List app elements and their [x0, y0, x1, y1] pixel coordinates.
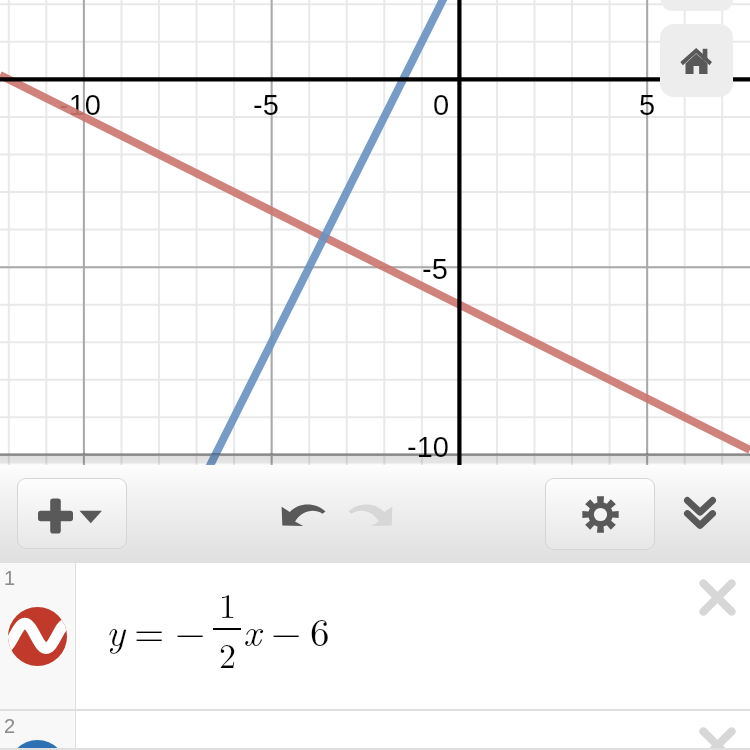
- staticText: 5: [639, 89, 656, 121]
- staticText: −: [271, 602, 302, 657]
- staticText: 0: [433, 89, 450, 121]
- button[interactable]: 2: [0, 711, 750, 750]
- button[interactable]: Settings: [546, 479, 654, 549]
- button[interactable]: Add expression: [18, 479, 126, 548]
- staticText: -10: [407, 431, 449, 463]
- button[interactable]: Redo: [338, 479, 406, 547]
- staticText: −: [175, 602, 206, 657]
- staticText: 2: [219, 630, 236, 678]
- button[interactable]: Delete expression: [688, 715, 748, 750]
- staticText: x: [243, 602, 262, 657]
- staticText: -5: [253, 89, 279, 121]
- button[interactable]: Delete expression: [688, 567, 748, 627]
- staticText: 2: [4, 715, 16, 737]
- staticText: 1: [219, 580, 236, 628]
- staticText: y: [106, 602, 125, 657]
- button[interactable]: 1: [0, 563, 750, 711]
- button[interactable]: Undo: [268, 479, 336, 547]
- staticText: -5: [422, 253, 448, 285]
- button[interactable]: Zoom in: [661, 0, 733, 11]
- staticText: 6: [310, 602, 330, 657]
- button[interactable]: Home: [660, 24, 733, 97]
- staticText: -10: [59, 89, 101, 121]
- staticText: =: [134, 602, 165, 657]
- button[interactable]: Hide keypad: [668, 481, 732, 545]
- staticText: 1: [4, 567, 16, 589]
